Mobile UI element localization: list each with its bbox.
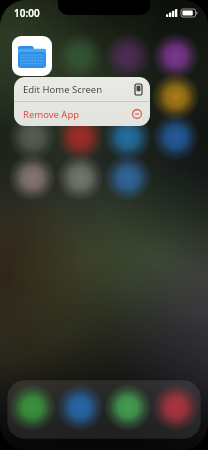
- staticText: Remove App: [23, 108, 80, 121]
- staticText: 10:00: [14, 6, 40, 20]
- staticText: Edit Home Screen: [23, 83, 103, 96]
- button[interactable]: Remove App: [14, 102, 150, 126]
- button[interactable]: Edit Home Screen: [14, 77, 150, 101]
- button[interactable]: Files: [12, 36, 52, 76]
